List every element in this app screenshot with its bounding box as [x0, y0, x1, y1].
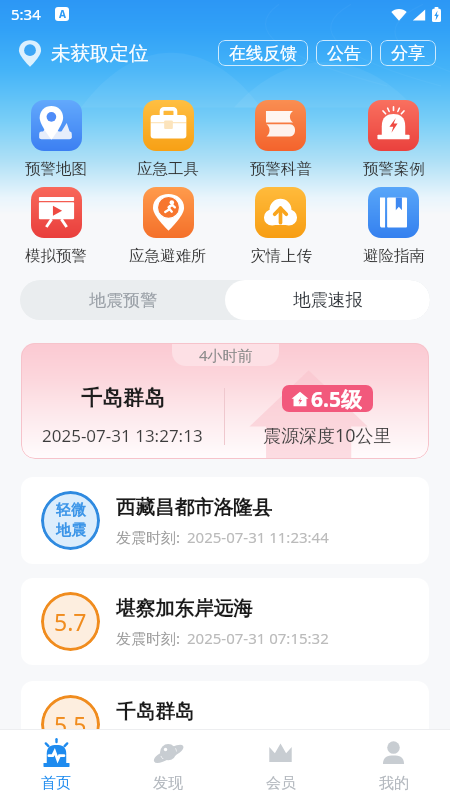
- staticText: 发现: [153, 774, 183, 793]
- staticText: 应急避难所: [129, 246, 207, 266]
- staticText: 应急工具: [137, 159, 199, 179]
- button[interactable]: 首页: [0, 730, 112, 800]
- staticText: 2025-07-31 13:27:13: [42, 424, 203, 447]
- staticText: 4小时前: [199, 345, 253, 365]
- staticText: 在线反馈: [229, 43, 297, 64]
- button[interactable]: 预警地图: [0, 100, 112, 179]
- button[interactable]: 在线反馈: [218, 40, 308, 66]
- button[interactable]: 发现: [112, 730, 224, 800]
- staticText: 5.7: [54, 606, 87, 637]
- staticText: 5.5: [54, 709, 87, 740]
- button[interactable]: 5.5: [21, 681, 429, 768]
- staticText: 堪察加东岸远海: [116, 596, 253, 621]
- button[interactable]: 应急工具: [112, 100, 224, 179]
- staticText: 千岛群岛: [116, 699, 194, 724]
- staticText: 发震时刻:: [116, 731, 181, 751]
- staticText: 震源深度10公里: [263, 423, 392, 448]
- staticText: 会员: [266, 774, 296, 793]
- button[interactable]: 灾情上传: [224, 187, 337, 266]
- button[interactable]: 预警案例: [337, 100, 450, 179]
- button[interactable]: 4小时前: [21, 343, 429, 459]
- staticText: 地震预警: [89, 290, 157, 311]
- staticText: 预警案例: [363, 159, 425, 179]
- staticText: 未获取定位: [51, 41, 149, 66]
- staticText: 首页: [41, 774, 71, 793]
- staticText: 6.5级: [311, 385, 362, 412]
- staticText: 发震时刻:: [116, 527, 181, 547]
- staticText: 预警地图: [25, 159, 87, 179]
- staticText: 模拟预警: [25, 246, 87, 266]
- staticText: 公告: [327, 43, 361, 64]
- staticText: 发震时刻:: [116, 628, 181, 648]
- button[interactable]: Location: [16, 39, 44, 67]
- button[interactable]: 模拟预警: [0, 187, 112, 266]
- button[interactable]: 公告: [316, 40, 372, 66]
- staticText: 避险指南: [363, 246, 425, 266]
- staticText: 地震速报: [293, 289, 363, 311]
- button[interactable]: 会员: [224, 730, 337, 800]
- staticText: 5:34: [11, 4, 41, 24]
- staticText: 地震: [56, 521, 86, 540]
- staticText: 我的: [379, 774, 409, 793]
- button[interactable]: 地震预警: [20, 280, 225, 320]
- staticText: 分享: [391, 43, 425, 64]
- button[interactable]: 应急避难所: [112, 187, 224, 266]
- staticText: 2025-07-31 07:15:32: [187, 628, 329, 648]
- button[interactable]: 分享: [380, 40, 436, 66]
- button[interactable]: 避险指南: [337, 187, 450, 266]
- staticText: 预警科普: [250, 159, 312, 179]
- staticText: 轻微: [56, 501, 86, 520]
- button[interactable]: 5.7: [21, 578, 429, 665]
- staticText: 灾情上传: [250, 246, 312, 266]
- button[interactable]: 地震速报: [225, 280, 430, 320]
- button[interactable]: 我的: [337, 730, 450, 800]
- staticText: A: [59, 7, 66, 21]
- button[interactable]: 轻微: [21, 477, 429, 564]
- staticText: 千岛群岛: [81, 385, 165, 411]
- staticText: 西藏昌都市洛隆县: [116, 495, 272, 520]
- button[interactable]: 预警科普: [224, 100, 337, 179]
- staticText: 2025-07-31 11:23:44: [187, 527, 329, 547]
- staticText: 2025-07-31 05:12:02: [187, 731, 329, 751]
